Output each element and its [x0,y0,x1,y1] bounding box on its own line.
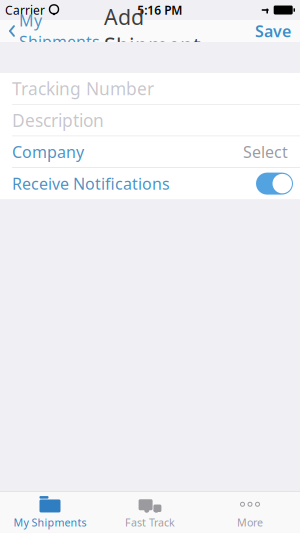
staticText: My Shipments [19,10,100,52]
button[interactable]: Company [0,136,300,167]
staticText: Tracking Number [12,77,154,100]
button[interactable]: Fast Track [100,492,200,533]
button[interactable]: Save [246,15,300,47]
staticText: More [237,515,263,529]
staticText: Description [12,109,104,132]
button[interactable]: More [200,492,300,533]
staticText: Select [243,141,288,162]
button[interactable]: My Shipments [0,5,100,57]
staticText: Add Shipment [104,3,201,59]
staticText: Receive Notifications [12,173,170,194]
staticText: Save [255,20,291,42]
staticText: Company [12,141,84,162]
button[interactable]: My Shipments [0,492,100,533]
staticText: 5:16 PM [137,2,182,18]
button[interactable]: Receive Notifications [0,168,300,199]
staticText: My Shipments [13,515,86,529]
staticText: Fast Track [125,515,175,529]
staticText: Carrier [5,2,45,18]
